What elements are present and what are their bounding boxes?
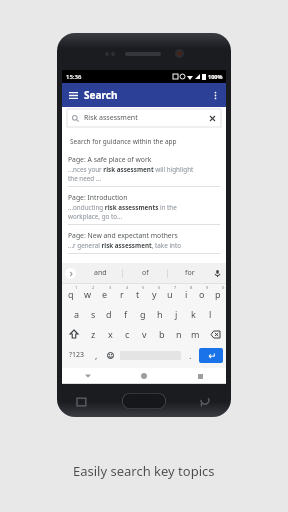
button[interactable]: t xyxy=(130,284,146,304)
staticText: ...r general risk assessment, take into xyxy=(68,241,182,250)
staticText: ?123 xyxy=(69,350,85,360)
staticText: f xyxy=(124,308,128,320)
staticText: w xyxy=(84,288,92,300)
button[interactable]: a xyxy=(69,304,85,324)
button[interactable]: and xyxy=(78,268,122,278)
staticText: 2 xyxy=(92,285,95,290)
staticText: Page: A safe place of work xyxy=(68,155,152,164)
button[interactable]: Back xyxy=(200,396,211,407)
button[interactable]: Hide keyboard xyxy=(82,370,94,382)
staticText: 7 xyxy=(174,285,177,290)
staticText: Risk assessment xyxy=(84,113,138,123)
staticText: and xyxy=(94,268,107,278)
staticText: c xyxy=(125,328,130,340)
staticText: of xyxy=(142,268,149,278)
button[interactable]: Enter xyxy=(199,348,223,363)
button[interactable]: b xyxy=(153,324,170,344)
staticText: d xyxy=(106,308,112,320)
staticText: Search xyxy=(84,88,118,102)
staticText: e xyxy=(102,288,108,300)
button[interactable]: Page: Introduction xyxy=(68,190,220,228)
staticText: 9 xyxy=(206,285,209,290)
button[interactable]: More options xyxy=(208,88,222,102)
button[interactable]: s xyxy=(85,304,101,324)
button[interactable]: , xyxy=(89,344,103,366)
staticText: v xyxy=(142,328,147,340)
staticText: m xyxy=(191,328,200,340)
button[interactable]: p xyxy=(210,284,226,304)
button[interactable]: Clear xyxy=(208,114,217,123)
button[interactable]: Backspace xyxy=(204,324,226,344)
staticText: workplace, go to... xyxy=(68,212,123,221)
button[interactable]: Voice input xyxy=(212,268,222,278)
button[interactable]: j xyxy=(168,304,185,324)
staticText: h xyxy=(157,308,163,320)
button[interactable]: Page: New and expectant mothers xyxy=(68,228,220,257)
button[interactable]: r xyxy=(113,284,130,304)
button[interactable]: for xyxy=(168,268,212,278)
button[interactable]: Shift xyxy=(62,324,85,344)
button[interactable]: Home xyxy=(138,370,150,382)
staticText: b xyxy=(159,328,165,340)
button[interactable]: Recent apps xyxy=(77,396,88,407)
staticText: for xyxy=(185,268,195,278)
button[interactable]: Risk assessment xyxy=(67,109,221,127)
button[interactable]: h xyxy=(151,304,168,324)
staticText: 6 xyxy=(158,285,161,290)
staticText: 0 xyxy=(222,285,225,290)
button[interactable]: w xyxy=(79,284,96,304)
staticText: x xyxy=(108,328,113,340)
button[interactable]: . xyxy=(183,344,198,366)
staticText: u xyxy=(167,288,173,300)
staticText: 100% xyxy=(208,73,223,80)
button[interactable]: Home xyxy=(122,393,166,409)
button[interactable]: g xyxy=(134,304,151,324)
button[interactable]: l xyxy=(202,304,219,324)
button[interactable]: n xyxy=(170,324,187,344)
button[interactable]: m xyxy=(187,324,204,344)
staticText: z xyxy=(91,328,96,340)
button[interactable]: v xyxy=(136,324,153,344)
staticText: Page: Introduction xyxy=(68,193,128,202)
staticText: 15:36 xyxy=(66,73,82,81)
button[interactable]: x xyxy=(102,324,119,344)
staticText: ...onducting risk assessments in the xyxy=(68,203,177,212)
staticText: 3 xyxy=(109,285,112,290)
staticText: l xyxy=(209,308,212,320)
button[interactable]: z xyxy=(85,324,102,344)
staticText: Search for guidance within the app xyxy=(70,137,177,146)
staticText: g xyxy=(140,308,146,320)
button[interactable]: q xyxy=(62,284,79,304)
staticText: the need ... xyxy=(68,174,101,183)
button[interactable]: k xyxy=(185,304,202,324)
staticText: . xyxy=(189,349,192,361)
button[interactable]: e xyxy=(96,284,113,304)
button[interactable]: c xyxy=(119,324,136,344)
staticText: o xyxy=(199,288,205,300)
staticText: 5 xyxy=(142,285,145,290)
button[interactable]: d xyxy=(101,304,117,324)
staticText: , xyxy=(95,349,98,361)
button[interactable]: f xyxy=(117,304,134,324)
button[interactable]: i xyxy=(178,284,194,304)
staticText: k xyxy=(191,308,196,320)
button[interactable]: Emoji xyxy=(103,344,118,366)
staticText: q xyxy=(68,288,74,300)
button[interactable]: Menu xyxy=(66,88,80,102)
button[interactable]: Page: A safe place of work xyxy=(68,152,220,190)
staticText: y xyxy=(152,288,157,300)
staticText: 8 xyxy=(190,285,193,290)
button[interactable]: o xyxy=(194,284,210,304)
button[interactable]: of xyxy=(123,268,167,278)
staticText: 4 xyxy=(126,285,129,290)
button[interactable]: u xyxy=(162,284,178,304)
staticText: i xyxy=(185,288,188,300)
staticText: j xyxy=(175,308,178,320)
button[interactable]: More suggestions xyxy=(65,268,76,279)
button[interactable]: Recent apps xyxy=(194,370,206,382)
staticText: Page: New and expectant mothers xyxy=(68,231,178,240)
button[interactable]: ?123 xyxy=(64,344,89,366)
button[interactable]: y xyxy=(146,284,162,304)
staticText: r xyxy=(120,288,124,300)
